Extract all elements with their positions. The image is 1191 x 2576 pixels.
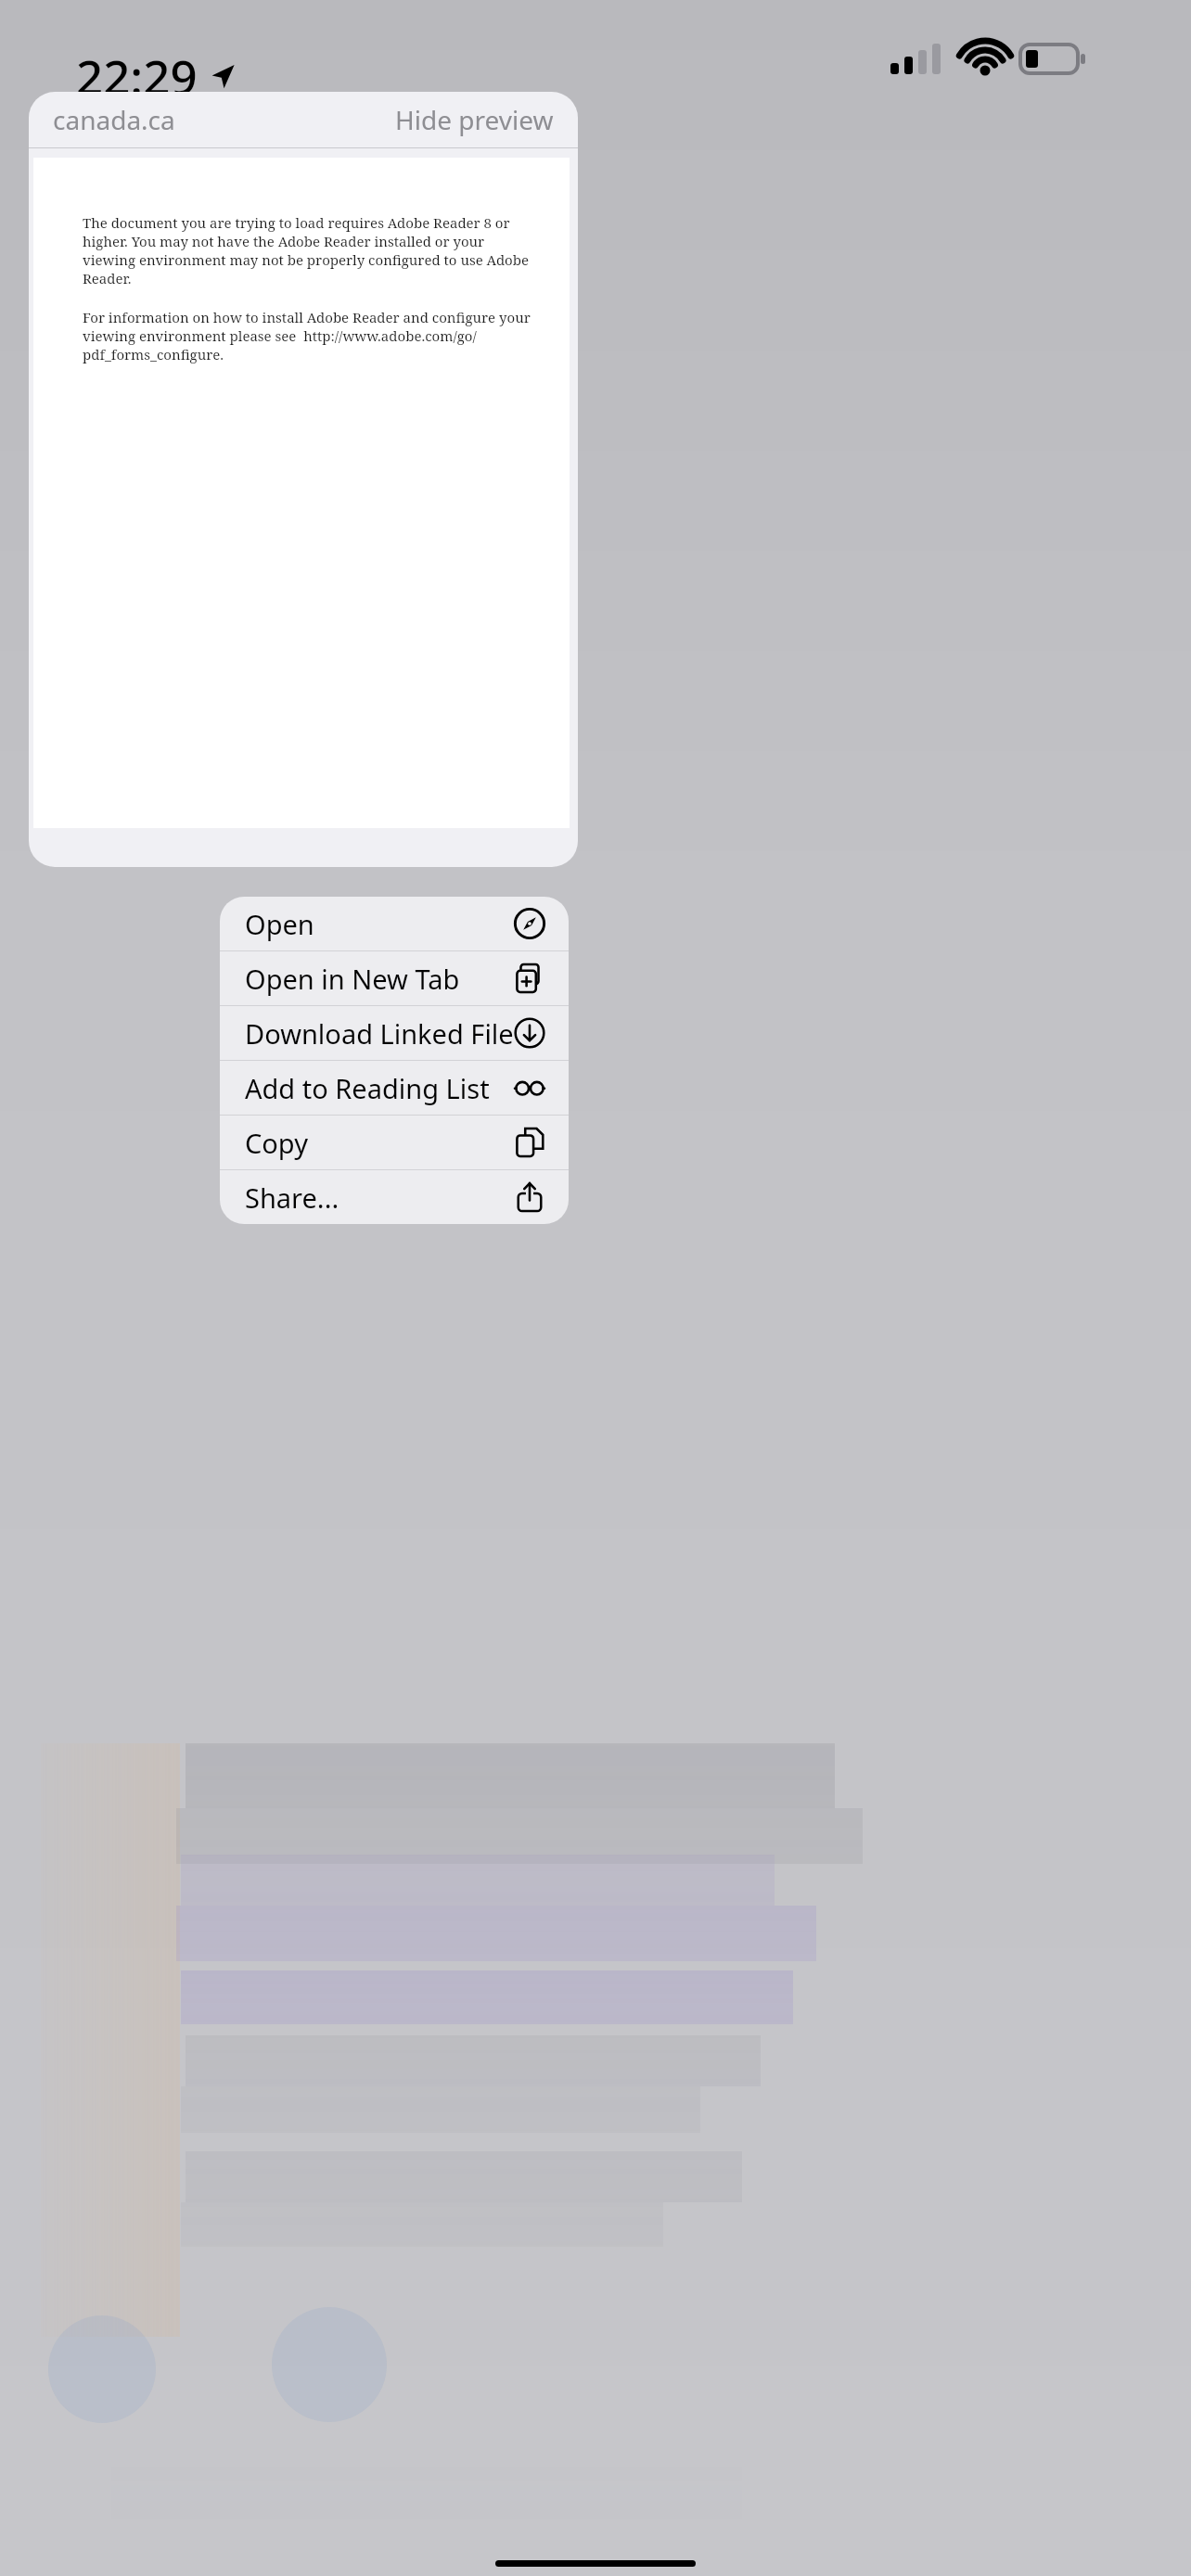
staticText: Open in New Tab — [245, 961, 460, 997]
button[interactable]: Download Linked File — [220, 1006, 569, 1060]
staticText: For information on how to install Adobe … — [83, 308, 531, 363]
staticText: Open — [245, 906, 314, 942]
button[interactable]: Open in New Tab — [220, 951, 569, 1005]
staticText: 22:29 — [76, 44, 198, 108]
button[interactable]: Open — [220, 897, 569, 950]
staticText: canada.ca — [53, 102, 175, 137]
button[interactable]: Add to Reading List — [220, 1061, 569, 1115]
staticText: The document you are trying to load requ… — [83, 213, 531, 287]
staticText: Add to Reading List — [245, 1070, 490, 1106]
button[interactable]: Hide preview — [395, 102, 554, 137]
button[interactable]: Share... — [220, 1170, 569, 1224]
staticText: Share... — [245, 1180, 339, 1216]
staticText: Hide preview — [395, 102, 554, 137]
button[interactable]: Copy — [220, 1116, 569, 1169]
button[interactable]: The document you are trying to load requ… — [33, 158, 570, 828]
staticText: Download Linked File — [245, 1015, 514, 1052]
staticText: Copy — [245, 1125, 308, 1161]
